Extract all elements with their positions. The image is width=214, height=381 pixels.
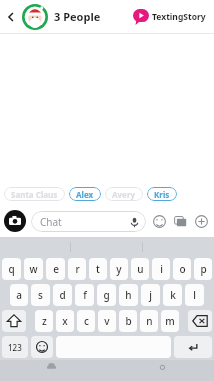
staticText: g <box>103 288 110 302</box>
button[interactable]: Emoji <box>150 212 168 230</box>
button[interactable]: r <box>68 258 86 280</box>
button[interactable]: a <box>10 284 28 306</box>
staticText: o <box>179 262 186 276</box>
staticText: Kris <box>154 189 170 200</box>
button[interactable]: u <box>131 258 149 280</box>
button[interactable]: i <box>152 258 170 280</box>
button[interactable]: h <box>119 284 138 306</box>
button[interactable]: Emoji keyboard <box>31 336 53 358</box>
button[interactable]: o <box>173 258 191 280</box>
button[interactable]: z <box>35 310 53 332</box>
staticText: y <box>116 262 122 276</box>
staticText: Santa Claus <box>11 189 58 200</box>
staticText: x <box>62 314 68 328</box>
button[interactable]: l <box>185 284 204 306</box>
staticText: a <box>16 288 22 302</box>
button[interactable]: 123 <box>2 336 28 358</box>
staticText: c <box>84 314 89 328</box>
button[interactable]: b <box>119 310 137 332</box>
button[interactable]: v <box>98 310 116 332</box>
staticText: Alex <box>76 189 94 200</box>
staticText: 3 People <box>54 9 101 24</box>
button[interactable]: Avery <box>105 187 143 201</box>
staticText: d <box>59 288 66 302</box>
button[interactable]: q <box>2 258 21 280</box>
button[interactable]: y <box>110 258 128 280</box>
staticText: Avery <box>112 189 136 200</box>
staticText: 123 <box>8 342 22 353</box>
button[interactable]: c <box>77 310 95 332</box>
staticText: j <box>149 288 152 302</box>
button[interactable]: j <box>141 284 160 306</box>
staticText: z <box>42 314 47 328</box>
button[interactable]: k <box>163 284 182 306</box>
staticText: s <box>38 288 43 302</box>
button[interactable]: e <box>46 258 65 280</box>
staticText: Chat <box>40 215 62 229</box>
staticText: n <box>146 314 153 328</box>
staticText: h <box>125 288 132 302</box>
button[interactable]: Camera <box>4 210 26 232</box>
staticText: e <box>53 262 59 276</box>
button[interactable]: s <box>31 284 50 306</box>
staticText: m <box>165 314 175 328</box>
button[interactable]: x <box>56 310 74 332</box>
button[interactable]: Shift <box>2 310 26 332</box>
button[interactable]: p <box>194 258 212 280</box>
staticText: v <box>104 314 110 328</box>
button[interactable]: Back <box>0 0 22 33</box>
button[interactable]: Alex <box>69 187 101 201</box>
button[interactable]: Backspace <box>188 310 212 332</box>
button[interactable]: g <box>97 284 116 306</box>
button[interactable]: w <box>24 258 43 280</box>
button[interactable]: d <box>53 284 72 306</box>
staticText: r <box>75 262 80 276</box>
button[interactable]: f <box>75 284 94 306</box>
button[interactable]: TextingStory <box>133 9 206 25</box>
staticText: q <box>8 262 15 276</box>
staticText: p <box>200 262 207 276</box>
button[interactable]: Enter <box>174 336 212 358</box>
button[interactable]: m <box>161 310 179 332</box>
button[interactable]: Add <box>192 212 210 230</box>
button[interactable]: Kris <box>147 187 177 201</box>
staticText: k <box>170 288 176 302</box>
staticText: t <box>96 262 100 276</box>
staticText: i <box>160 262 163 276</box>
button[interactable]: Gallery <box>171 212 189 230</box>
button[interactable]: Voice input <box>125 213 143 231</box>
button[interactable]: n <box>140 310 158 332</box>
button[interactable]: Santa Claus <box>4 187 65 201</box>
button[interactable]: Chat <box>31 211 146 232</box>
staticText: w <box>29 262 38 276</box>
staticText: l <box>193 288 196 302</box>
staticText: b <box>125 314 132 328</box>
staticText: f <box>83 288 87 302</box>
staticText: TextingStory <box>152 11 206 23</box>
button[interactable]: t <box>89 258 107 280</box>
staticText: u <box>137 262 144 276</box>
